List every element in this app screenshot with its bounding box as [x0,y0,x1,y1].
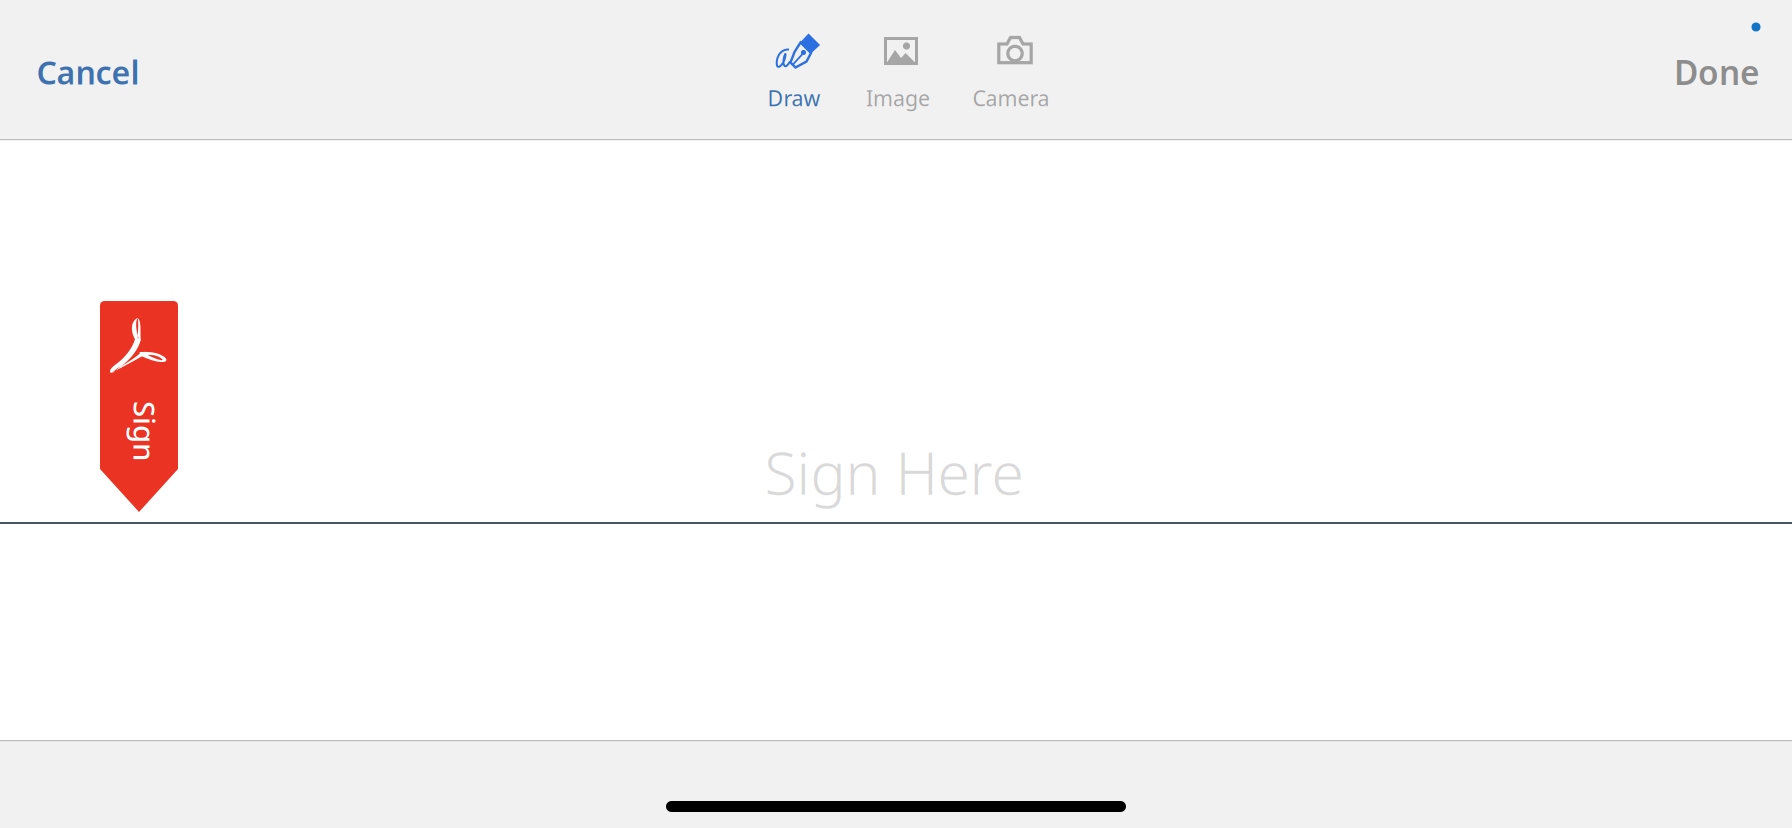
button[interactable]: Draw [746,4,850,134]
staticText: Done [1674,50,1760,94]
staticText: Sign Here [764,433,1023,511]
staticText: Cancel [36,51,139,93]
staticText: Draw [767,84,820,112]
button[interactable]: Camera [955,4,1075,134]
button[interactable]: Done [1637,32,1792,112]
staticText: Sign [115,411,175,450]
button[interactable]: Cancel [0,32,178,112]
button[interactable]: Sign [100,301,178,512]
staticText: Image [866,84,930,112]
staticText: Camera [972,84,1049,112]
button[interactable]: Image [849,4,953,134]
